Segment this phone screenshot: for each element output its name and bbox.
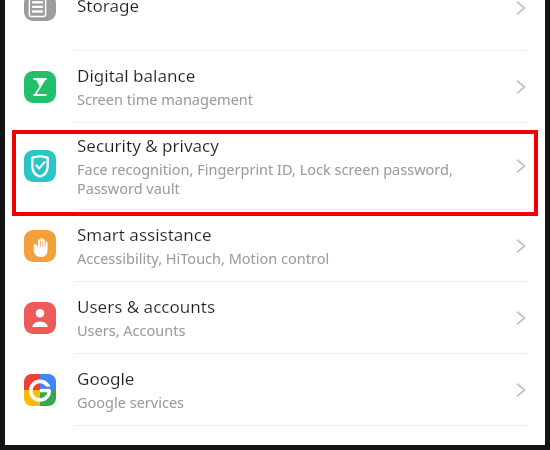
staticText: Screen time management bbox=[77, 89, 253, 109]
staticText: Face recognition, Fingerprint ID, Lock s… bbox=[77, 159, 453, 198]
button[interactable]: Digital balance bbox=[5, 51, 545, 123]
staticText: Security & privacy bbox=[77, 134, 219, 157]
staticText: Google services bbox=[77, 392, 185, 412]
button[interactable]: Storage bbox=[5, 0, 545, 33]
staticText: Users & accounts bbox=[77, 295, 216, 318]
staticText: Storage bbox=[77, 0, 140, 17]
staticText: Digital balance bbox=[77, 64, 196, 87]
button[interactable]: Google bbox=[5, 354, 545, 426]
staticText: Smart assistance bbox=[77, 223, 212, 246]
button[interactable]: Smart assistance bbox=[5, 210, 545, 282]
staticText: Google bbox=[77, 367, 135, 390]
button[interactable]: Security & privacy bbox=[5, 123, 545, 210]
staticText: Users, Accounts bbox=[77, 320, 186, 340]
button[interactable]: Users & accounts bbox=[5, 282, 545, 354]
staticText: Accessibility, HiTouch, Motion control bbox=[77, 248, 330, 268]
other: Security and privacy highlight bbox=[12, 130, 538, 216]
